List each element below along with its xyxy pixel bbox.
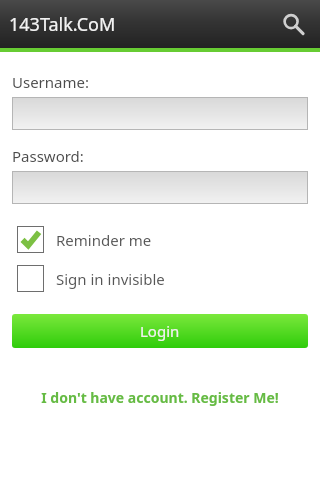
staticText: I don't have account. Register Me! [41,388,279,407]
button[interactable]: I don't have account. Register Me! [12,388,308,407]
staticText: 143Talk.CoM [9,12,116,37]
staticText: Password: [12,146,84,166]
button[interactable]: Login [12,314,308,348]
button[interactable] [12,97,308,130]
button[interactable] [12,171,308,204]
button[interactable]: Search [272,3,314,45]
staticText: Sign in invisible [56,269,165,289]
staticText: Username: [12,72,89,92]
button[interactable]: Reminder me [17,226,152,253]
staticText: Reminder me [56,230,152,250]
staticText: Login [140,321,180,341]
button[interactable]: Sign in invisible [17,265,165,292]
